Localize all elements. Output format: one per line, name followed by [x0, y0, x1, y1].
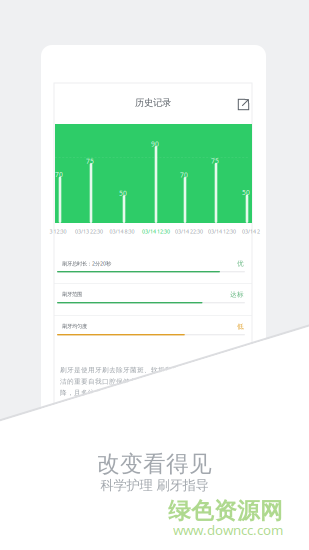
- staticText: 03/14 2: [242, 228, 260, 235]
- button[interactable]: Open full history: [233, 94, 254, 115]
- staticText: 绿色资源网: [168, 497, 283, 525]
- staticText: 50: [242, 188, 250, 197]
- staticText: 3 12:30: [49, 228, 66, 235]
- staticText: 科学护理 刷牙指导: [100, 477, 208, 493]
- staticText: 刷牙总时长：2分20秒: [62, 260, 111, 267]
- staticText: 03/14 12:30: [142, 228, 170, 235]
- staticText: 03/13 22:30: [75, 228, 103, 235]
- staticText: 降，且多注意牙龈边缘与牙缝的清洁: [60, 389, 172, 397]
- staticText: 70: [55, 170, 63, 179]
- staticText: 75: [86, 157, 94, 166]
- staticText: 70: [180, 170, 188, 179]
- staticText: 洁的重要自我口腔保健方法。刷牙时应注意: [60, 377, 193, 386]
- staticText: 75: [211, 156, 219, 165]
- staticText: 优: [237, 259, 244, 268]
- staticText: 历史记录: [135, 97, 171, 108]
- staticText: www.downcc.com: [173, 521, 283, 539]
- staticText: 刷牙是使用牙刷去除牙菌斑、软垢和食物残屑: [60, 366, 200, 374]
- staticText: 90: [151, 139, 159, 148]
- staticText: 低: [237, 322, 244, 331]
- staticText: 50: [119, 189, 127, 198]
- staticText: 改变看得见: [97, 450, 212, 478]
- staticText: 03/14 8:30: [109, 228, 134, 235]
- staticText: 03/14 12:30: [208, 228, 236, 235]
- staticText: 刷牙均匀度: [62, 323, 87, 330]
- staticText: 03/14 22:30: [175, 228, 203, 235]
- staticText: 达标: [230, 290, 244, 299]
- staticText: 刷牙范围: [62, 291, 82, 298]
